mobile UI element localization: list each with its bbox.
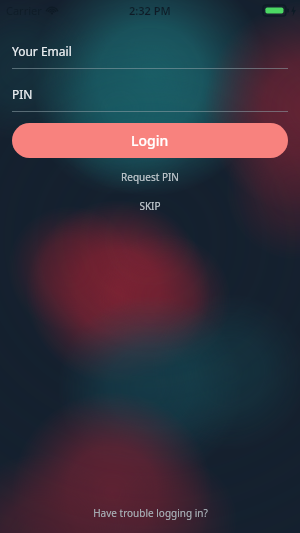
button[interactable]: Have trouble logging in? [0, 506, 300, 533]
staticText: Login [131, 131, 169, 150]
button[interactable]: Login [12, 123, 288, 158]
staticText: Have trouble logging in? [93, 506, 208, 520]
button[interactable]: SKIP [0, 199, 300, 213]
staticText: PIN [12, 86, 33, 102]
button[interactable]: Your Email [0, 43, 300, 69]
staticText: Request PIN [121, 170, 179, 184]
staticText: Your Email [12, 43, 72, 59]
staticText: SKIP [139, 199, 161, 213]
button[interactable]: Request PIN [0, 170, 300, 184]
staticText: 2:32 PM [129, 3, 171, 18]
button[interactable]: PIN [0, 86, 300, 112]
